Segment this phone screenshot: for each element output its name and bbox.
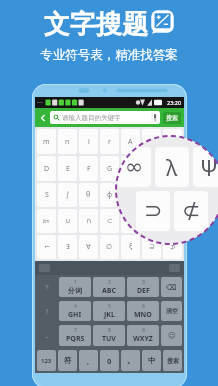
button[interactable]: 3: [127, 277, 159, 297]
staticText: 符: [64, 356, 72, 365]
button[interactable]: S: [37, 183, 56, 207]
staticText: l: [88, 137, 90, 147]
button[interactable]: G: [100, 156, 119, 181]
staticText: ⊃: [128, 217, 134, 225]
button[interactable]: Ψ: [193, 147, 218, 187]
button[interactable]: Ǝ: [58, 235, 77, 259]
button[interactable]: ∀: [79, 235, 98, 259]
button[interactable]: ∞: [117, 147, 151, 187]
staticText: 23:20: [167, 99, 182, 106]
staticText: 0: [107, 356, 112, 366]
staticText: !: [46, 306, 49, 316]
button[interactable]: B: [142, 129, 161, 154]
button[interactable]: λ: [142, 183, 161, 207]
staticText: GHI: [68, 310, 82, 320]
button[interactable]: 7: [59, 325, 91, 346]
staticText: Ψ: [170, 190, 176, 200]
button[interactable]: 8: [93, 325, 125, 346]
staticText: G: [107, 164, 113, 174]
button[interactable]: n: [58, 129, 77, 154]
button[interactable]: ⌐: [37, 235, 56, 259]
button[interactable]: Ψ: [163, 183, 182, 207]
staticText: ABC: [102, 286, 116, 296]
staticText: S: [45, 190, 49, 200]
staticText: ∫: [66, 191, 70, 199]
button[interactable]: 5: [93, 301, 125, 321]
button[interactable]: A: [121, 129, 140, 154]
button[interactable]: ⊇: [142, 235, 161, 259]
button[interactable]: ∅: [100, 235, 119, 259]
button[interactable]: φ: [100, 183, 119, 207]
staticText: ⊂: [107, 217, 113, 225]
button[interactable]: 0: [100, 350, 119, 371]
button[interactable]: ≠: [163, 209, 182, 233]
button[interactable]: 。: [121, 350, 140, 371]
button[interactable]: E: [58, 156, 77, 181]
button[interactable]: ,: [79, 350, 98, 371]
button[interactable]: 符: [58, 350, 77, 371]
button[interactable]: 123: [37, 350, 56, 371]
button[interactable]: θ: [79, 183, 98, 207]
button[interactable]: m: [37, 129, 56, 154]
button[interactable]: ∞: [121, 183, 140, 207]
staticText: 2: [108, 279, 111, 286]
button[interactable]: lim: [37, 209, 56, 233]
staticText: ∪: [65, 217, 71, 225]
button[interactable]: 9: [127, 325, 159, 346]
button[interactable]: H: [121, 156, 140, 181]
staticText: r: [108, 137, 111, 147]
staticText: ☺: [168, 331, 176, 340]
button[interactable]: l: [79, 129, 98, 154]
button[interactable]: 6: [127, 301, 159, 321]
staticText: 搜索: [167, 357, 179, 365]
button[interactable]: I: [142, 156, 161, 181]
staticText: Ǝ: [66, 242, 70, 252]
button[interactable]: ξ: [121, 235, 140, 259]
staticText: ∞: [125, 154, 144, 180]
staticText: m: [43, 137, 50, 147]
button[interactable]: 1: [59, 277, 91, 297]
staticText: MNO: [134, 310, 152, 320]
button[interactable]: ⊅: [163, 235, 182, 259]
button[interactable]: 清空: [161, 301, 182, 321]
button[interactable]: 4: [59, 301, 91, 321]
button[interactable]: ?: [37, 277, 57, 297]
staticText: 文字搜题: [44, 8, 148, 41]
button[interactable]: ⌫: [161, 277, 182, 297]
button[interactable]: 中: [142, 350, 161, 371]
button[interactable]: Back: [38, 113, 48, 123]
button[interactable]: ∩: [79, 209, 98, 233]
staticText: ⊅: [170, 243, 176, 251]
button[interactable]: ⊃: [121, 209, 140, 233]
staticText: ∀: [86, 243, 91, 251]
button[interactable]: r: [100, 129, 119, 154]
staticText: 请输入题目的关键字: [62, 114, 152, 122]
button[interactable]: ⊄: [174, 191, 208, 231]
button[interactable]: λ: [155, 147, 189, 187]
staticText: ≠: [170, 216, 175, 226]
staticText: D: [44, 164, 50, 174]
staticText: 1: [74, 279, 77, 286]
button[interactable]: 请输入题目的关键字: [50, 111, 160, 124]
button[interactable]: 搜索: [163, 350, 182, 371]
button[interactable]: C: [163, 129, 182, 154]
button[interactable]: J: [163, 156, 182, 181]
button[interactable]: D: [37, 156, 56, 181]
button[interactable]: 搜索: [163, 112, 181, 124]
button[interactable]: ⊂: [100, 209, 119, 233]
button[interactable]: 2: [93, 277, 125, 297]
button[interactable]: ☺: [161, 325, 182, 346]
staticText: 3: [142, 279, 145, 286]
staticText: 搜索: [166, 114, 178, 122]
button[interactable]: ∪: [58, 209, 77, 233]
button[interactable]: ⊄: [142, 209, 161, 233]
button[interactable]: ∫: [58, 183, 77, 207]
button[interactable]: ⊃: [136, 191, 170, 231]
staticText: 清空: [166, 307, 178, 315]
button[interactable]: F: [79, 156, 98, 181]
button[interactable]: !: [37, 301, 57, 321]
